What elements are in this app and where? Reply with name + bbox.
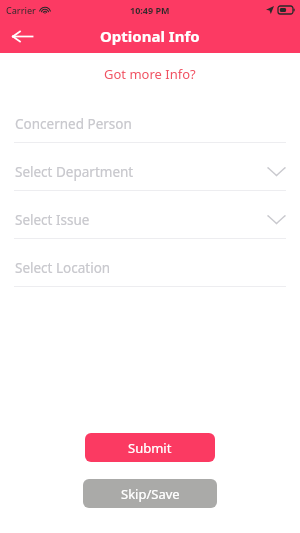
staticText: Concerned Person [15, 115, 285, 133]
staticText: Select Issue [15, 211, 268, 229]
staticText: Skip/Save [121, 485, 180, 503]
button[interactable]: Concerned Person [0, 105, 300, 142]
button[interactable]: Skip/Save [83, 479, 217, 508]
staticText: Select Department [15, 163, 268, 181]
staticText: Carrier [6, 4, 36, 16]
staticText: Got more Info? [104, 65, 196, 83]
button[interactable]: Back [0, 19, 44, 53]
staticText: Select Location [15, 259, 285, 277]
staticText: 10:49 PM [130, 4, 170, 16]
button[interactable]: Select Department [0, 153, 300, 190]
staticText: Submit [128, 439, 172, 457]
button[interactable]: Select Issue [0, 201, 300, 238]
staticText: Optional Info [100, 26, 200, 46]
button[interactable]: Submit [85, 433, 215, 462]
button[interactable]: Select Location [0, 249, 300, 286]
